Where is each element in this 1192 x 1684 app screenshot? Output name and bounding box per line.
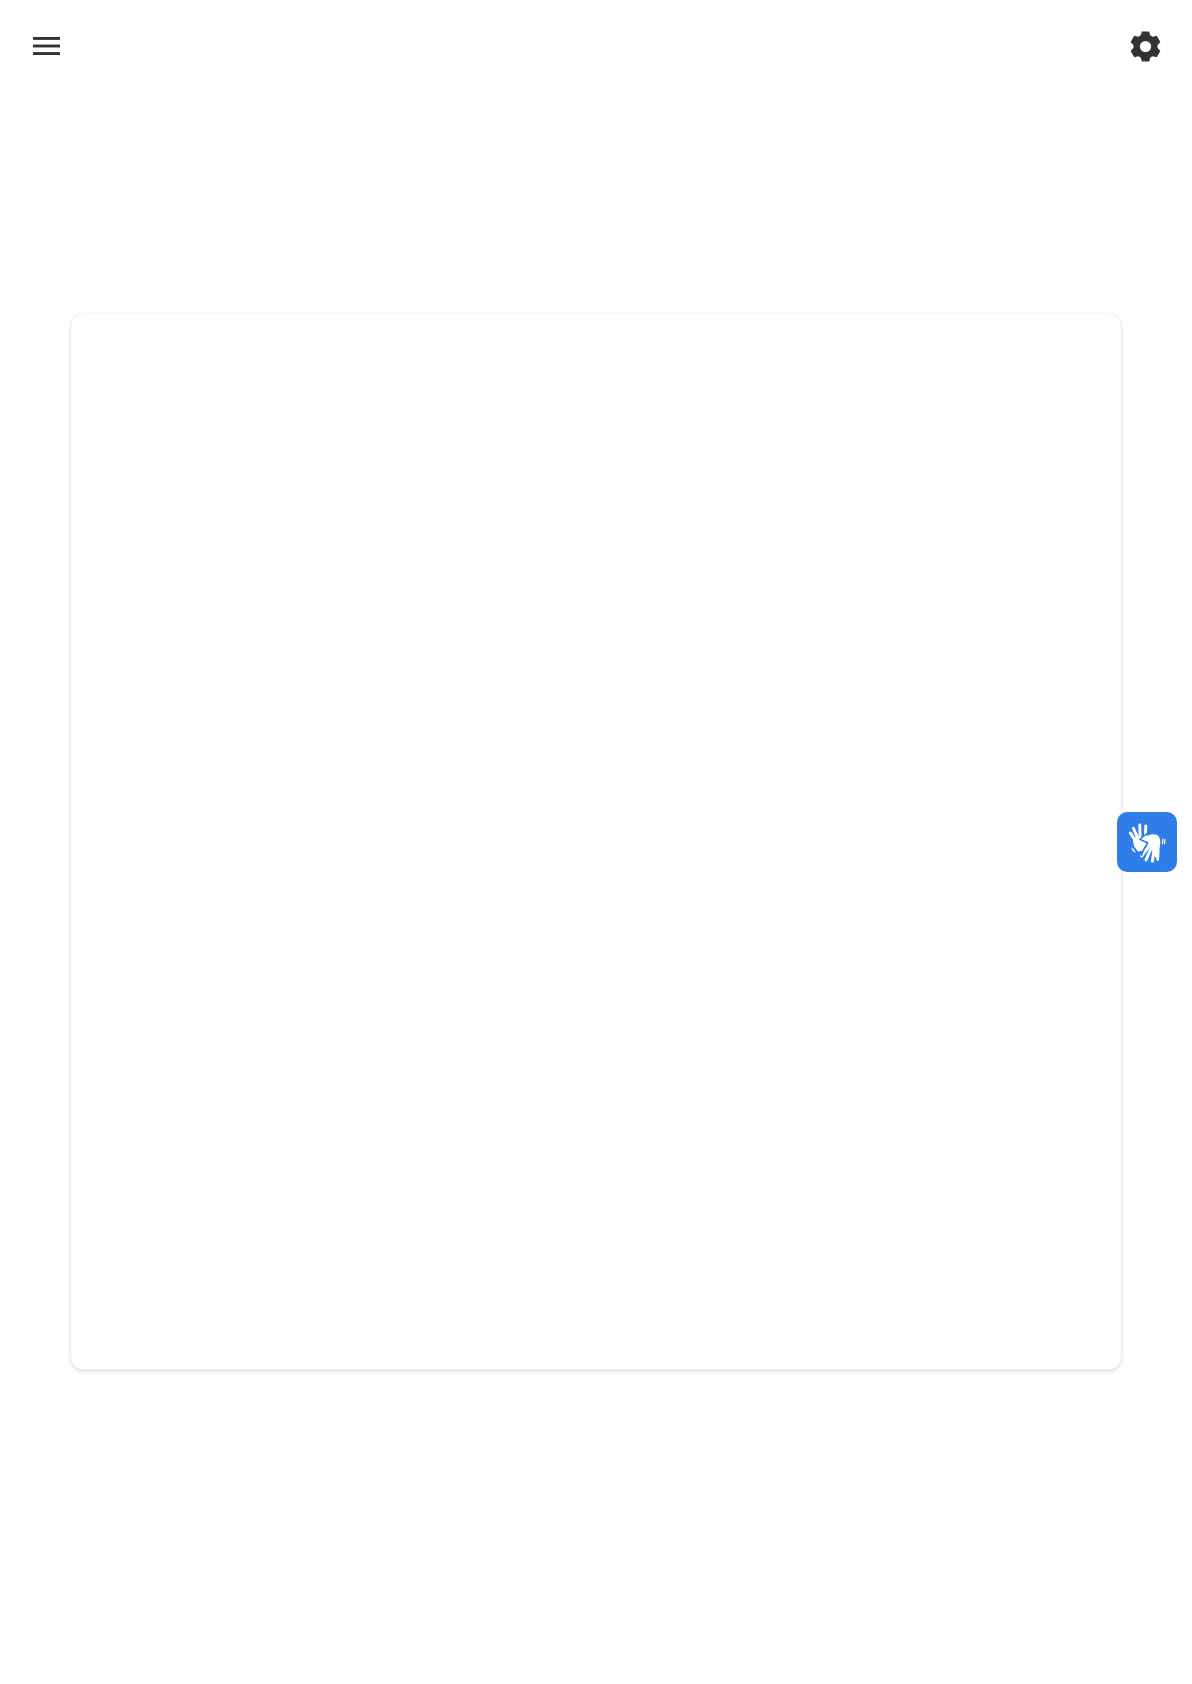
button[interactable]: Open navigation menu (18, 21, 74, 71)
button[interactable]: Sign language interpreter (1117, 812, 1177, 872)
button[interactable]: Settings (1117, 18, 1173, 74)
